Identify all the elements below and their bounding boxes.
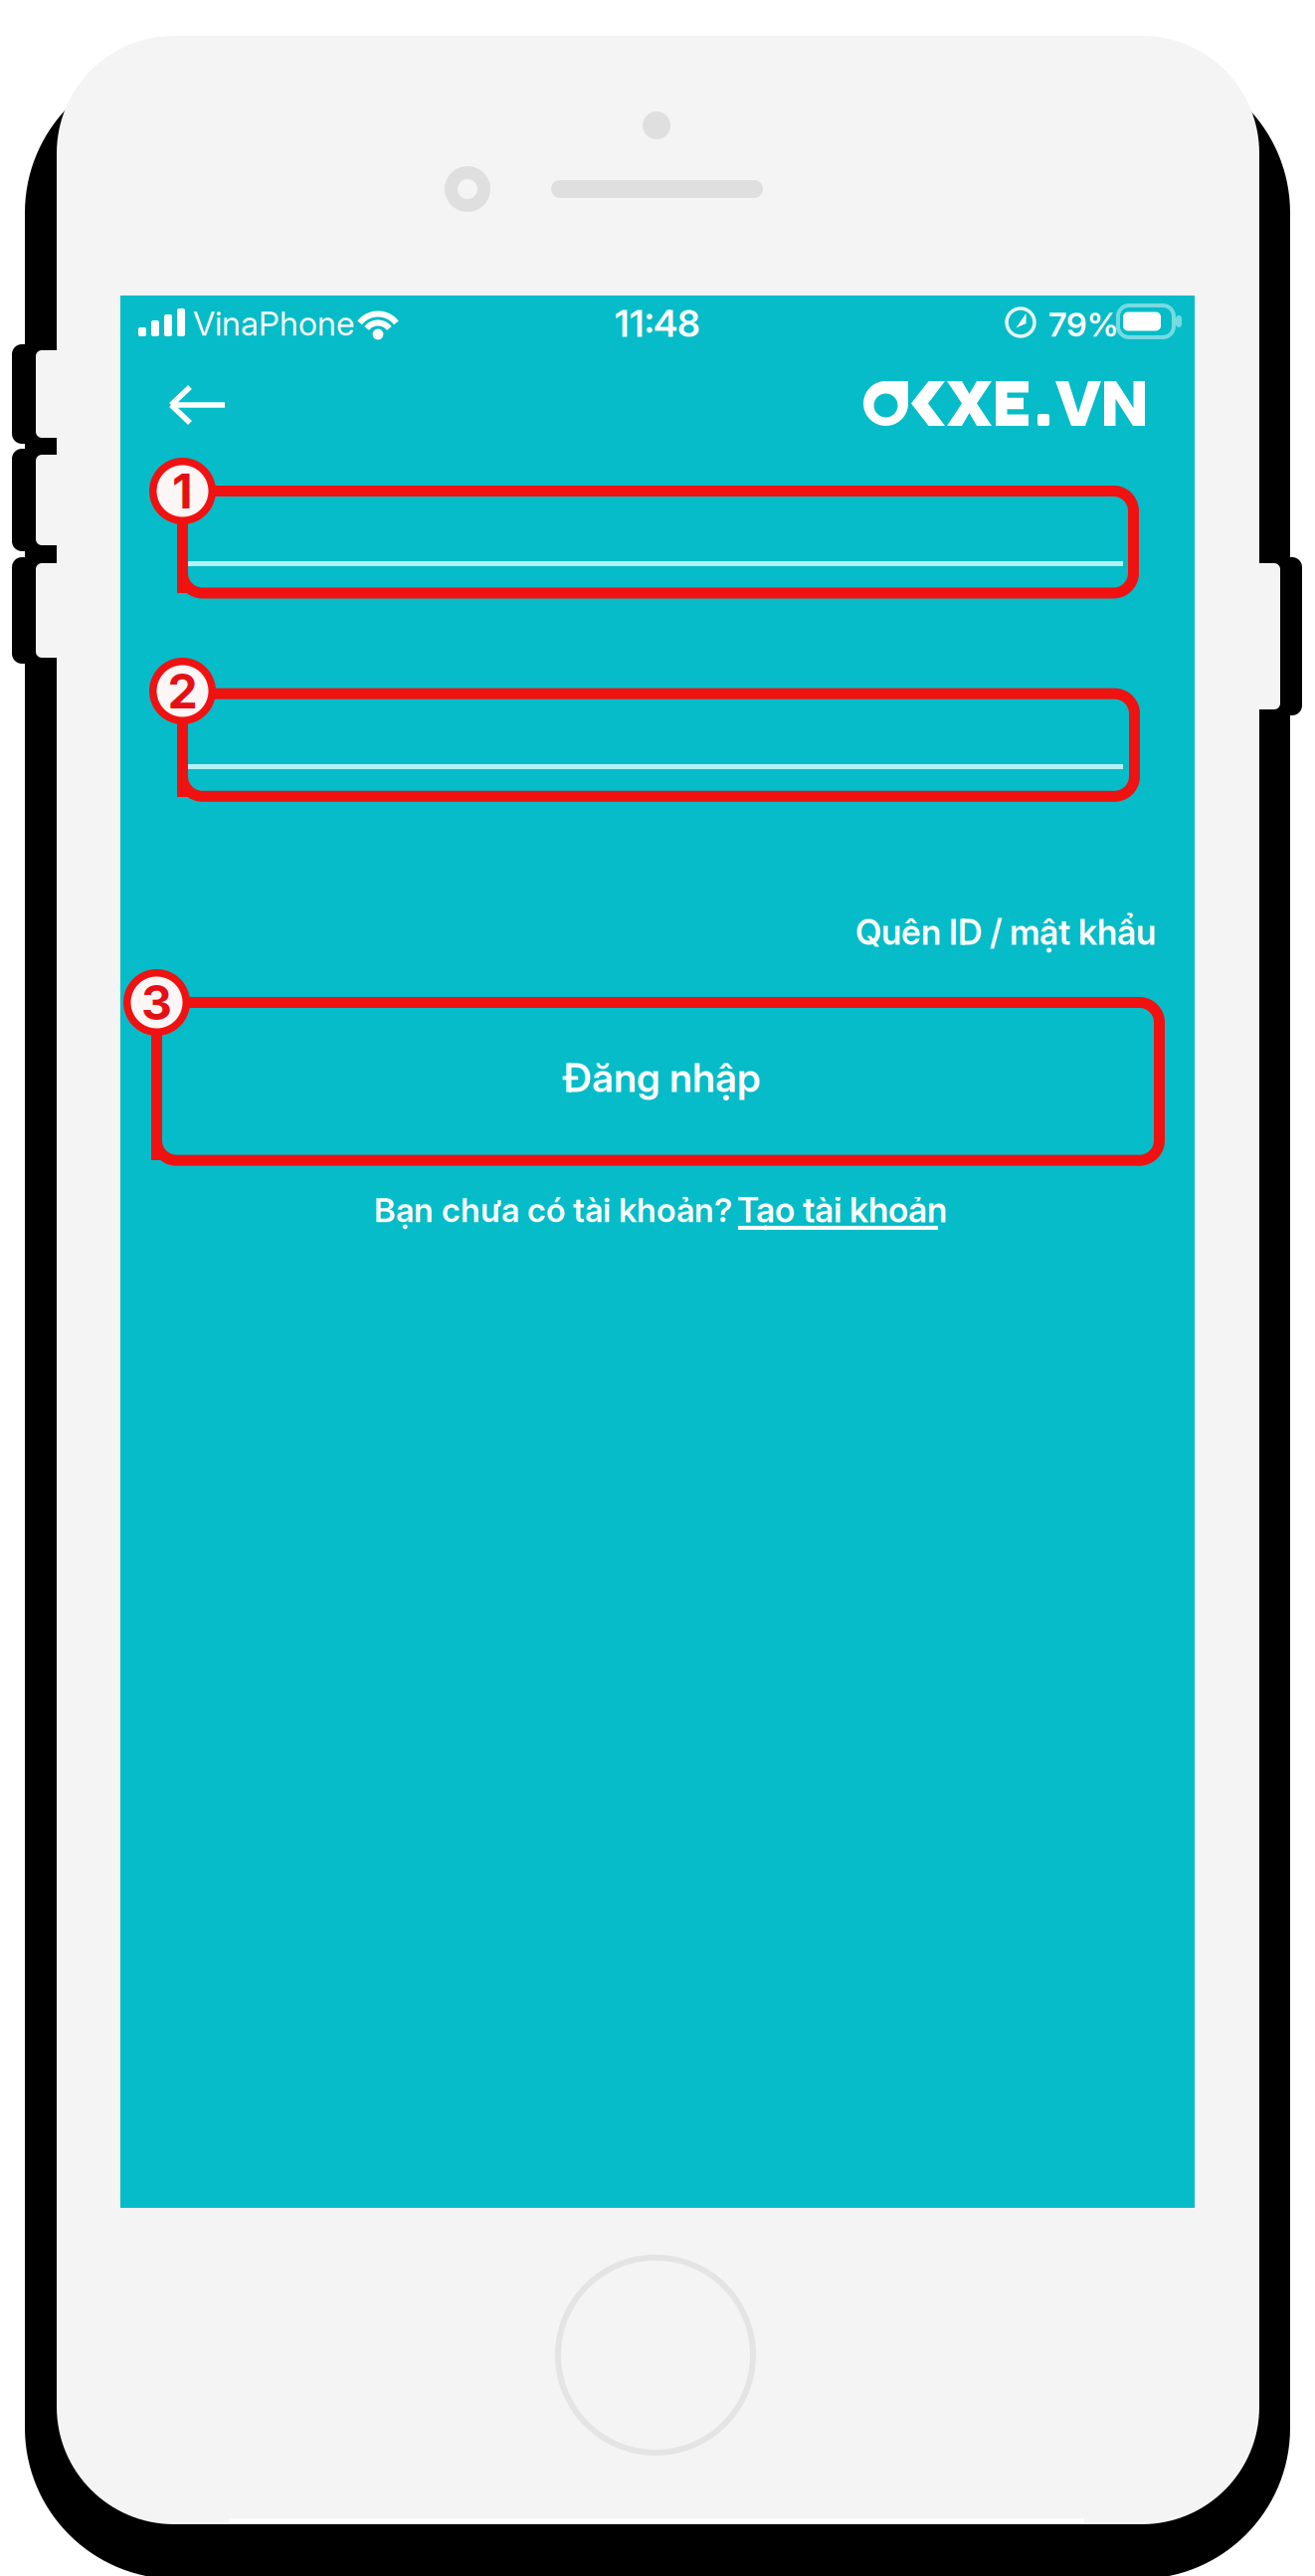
staticText: 2 <box>168 662 197 720</box>
staticText: 1 <box>172 462 193 520</box>
staticText: 79% <box>1048 304 1118 344</box>
button[interactable]: Đăng nhập <box>120 296 1121 441</box>
staticText: VinaPhone <box>193 303 354 343</box>
button[interactable]: Back <box>120 296 236 387</box>
staticText: 11:48 <box>615 301 700 346</box>
staticText: Tạo tài khoản <box>737 1189 947 1231</box>
button[interactable]: Quên ID / mật khẩu <box>120 296 464 351</box>
button[interactable]: Tạo tài khoản <box>120 296 335 355</box>
staticText: Bạn chưa có tài khoản? <box>374 1190 732 1230</box>
staticText: 3 <box>141 974 172 1031</box>
staticText: Quên ID / mật khẩu <box>855 911 1156 953</box>
staticText: Đăng nhập <box>562 1053 761 1102</box>
